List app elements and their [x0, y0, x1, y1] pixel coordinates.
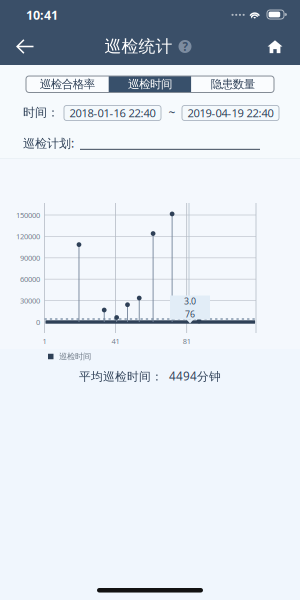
staticText: 巡检统计 — [104, 36, 172, 57]
staticText: 巡检计划: — [23, 135, 74, 151]
staticText: 巡检合格率 — [40, 77, 95, 91]
staticText: 2019-04-19 22:40 — [187, 105, 273, 121]
staticText: 150000 — [16, 210, 40, 220]
staticText: ~ — [168, 104, 175, 121]
staticText: 41 — [112, 336, 120, 346]
staticText: 2018-01-16 22:40 — [69, 105, 155, 121]
staticText: ? — [182, 39, 187, 54]
button[interactable]: Inspection plan — [80, 136, 260, 150]
staticText: 平均巡检时间： 4494分钟 — [79, 368, 221, 384]
staticText: 81 — [183, 336, 191, 346]
button[interactable]: Help — [178, 40, 191, 53]
staticText: 巡检时间 — [128, 77, 172, 91]
staticText: 90000 — [20, 253, 40, 263]
staticText: 隐患数量 — [211, 77, 255, 91]
button[interactable]: 巡检合格率 — [26, 76, 109, 92]
staticText: 1 — [42, 336, 46, 346]
staticText: 巡检时间 — [59, 351, 91, 362]
button[interactable]: 2019-04-19 22:40 — [182, 105, 279, 120]
button[interactable]: 巡检时间 — [109, 76, 191, 92]
button[interactable]: Back — [8, 28, 42, 65]
staticText: 10:41 — [26, 6, 58, 24]
staticText: 3.0 — [184, 295, 196, 307]
button[interactable]: 2018-01-16 22:40 — [64, 105, 161, 120]
staticText: 76 — [185, 308, 195, 320]
staticText: 0 — [36, 317, 40, 327]
button[interactable]: Home — [258, 28, 292, 65]
staticText: 时间： — [23, 105, 59, 120]
button[interactable]: 隐患数量 — [191, 76, 274, 92]
staticText: 120000 — [16, 231, 40, 241]
staticText: 60000 — [20, 274, 40, 284]
staticText: 30000 — [20, 295, 40, 306]
